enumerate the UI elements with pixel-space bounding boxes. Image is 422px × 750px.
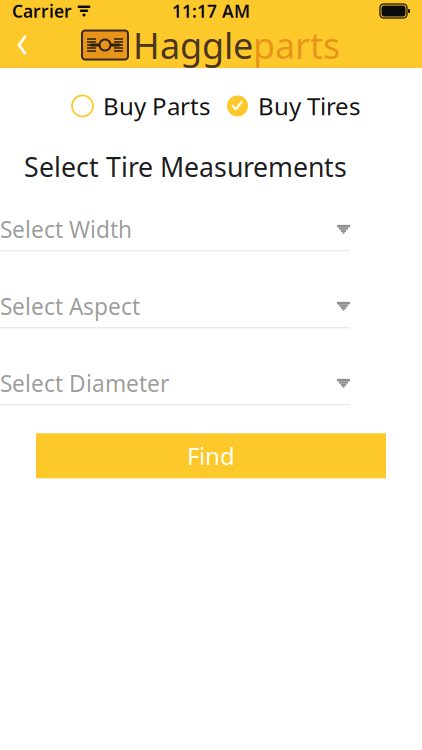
button[interactable]: Select Diameter [0,371,350,405]
staticText: Buy Tires [258,90,360,122]
button[interactable]: Select Aspect [0,294,350,328]
button[interactable]: Buy Parts [72,84,210,128]
staticText: Select Diameter [0,368,169,398]
staticText: Haggle [133,21,253,69]
button[interactable]: Find [36,433,386,478]
staticText: Select Aspect [0,291,140,321]
button[interactable]: Buy Tires [227,84,360,128]
staticText: parts [253,21,340,69]
staticText: 11:17 AM [172,0,250,22]
button[interactable]: Back [0,22,44,68]
button[interactable]: Select Width [0,217,350,251]
staticText: Carrier [12,0,72,22]
staticText: Select Width [0,214,132,244]
staticText: Buy Parts [103,90,210,122]
staticText: Find [187,440,235,472]
staticText: Select Tire Measurements [24,149,347,184]
